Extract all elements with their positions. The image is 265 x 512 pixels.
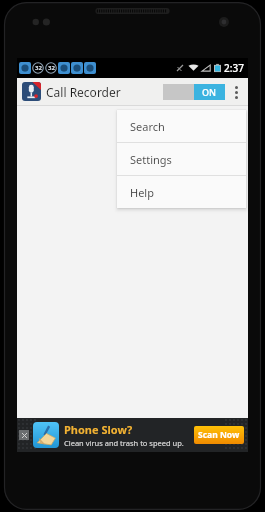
staticText: 2:37: [224, 61, 244, 75]
button[interactable]: ON: [163, 84, 225, 100]
button[interactable]: Settings: [117, 143, 246, 175]
button[interactable]: Close ad: [17, 418, 248, 452]
staticText: Search: [130, 119, 165, 134]
button[interactable]: Scan Now: [194, 426, 244, 444]
staticText: Settings: [130, 152, 172, 167]
button[interactable]: Close ad: [19, 430, 29, 440]
staticText: Scan Now: [198, 429, 240, 441]
staticText: 32: [48, 64, 55, 72]
staticText: ON: [202, 86, 217, 98]
staticText: Clean virus and trash to speed up.: [64, 438, 184, 448]
staticText: Call Recorder: [46, 84, 121, 100]
button[interactable]: More options: [229, 80, 243, 104]
button[interactable]: Search: [117, 110, 246, 142]
button[interactable]: Help: [117, 176, 246, 208]
staticText: Phone Slow?: [64, 422, 133, 437]
staticText: Help: [130, 185, 154, 200]
staticText: 32: [35, 64, 42, 72]
